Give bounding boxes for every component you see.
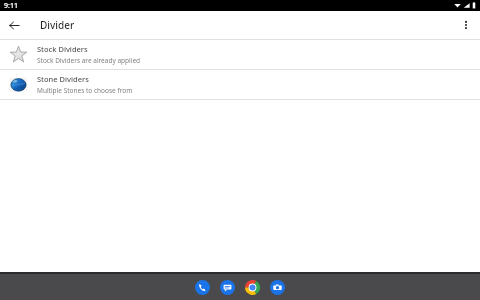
button[interactable]: Camera: [269, 279, 286, 296]
button[interactable]: Back: [0, 11, 28, 39]
button[interactable]: Chrome: [244, 279, 261, 296]
staticText: Stock Dividers are already applied: [37, 56, 141, 65]
button[interactable]: Phone: [194, 279, 211, 296]
staticText: Multiple Stones to choose from: [37, 86, 133, 95]
button[interactable]: Stone Dividers: [0, 70, 480, 99]
staticText: 9:11: [4, 1, 18, 11]
button[interactable]: More options: [452, 11, 480, 39]
staticText: Divider: [40, 18, 75, 32]
staticText: Stone Dividers: [37, 74, 89, 84]
staticText: Stock Dividers: [37, 44, 88, 54]
button[interactable]: Stock Dividers: [0, 40, 480, 69]
button[interactable]: Messages: [219, 279, 236, 296]
